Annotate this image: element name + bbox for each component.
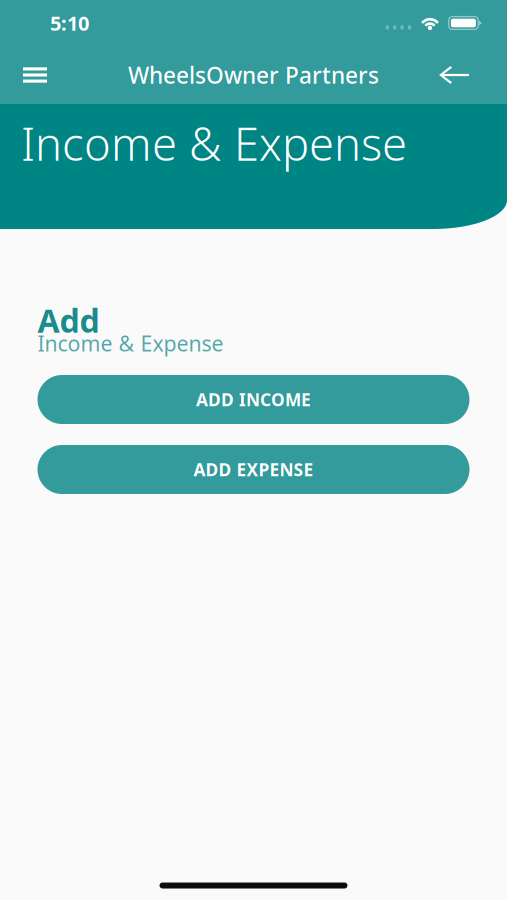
staticText: Income & Expense <box>21 113 407 173</box>
staticText: ADD INCOME <box>196 388 311 411</box>
staticText: Add <box>37 299 99 341</box>
staticText: Income & Expense <box>37 329 223 357</box>
staticText: ADD EXPENSE <box>193 458 313 481</box>
button[interactable]: Menu <box>11 51 59 99</box>
staticText: WheelsOwner Partners <box>128 60 379 90</box>
staticText: 5:10 <box>50 10 89 36</box>
button[interactable]: Back <box>430 51 478 99</box>
button[interactable]: ADD EXPENSE <box>37 445 469 494</box>
button[interactable]: ADD INCOME <box>37 375 469 424</box>
